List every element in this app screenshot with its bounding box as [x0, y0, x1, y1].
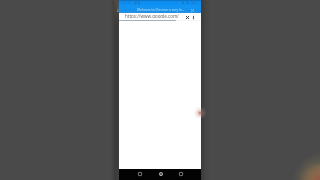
staticText: 11:11 — [121, 0, 132, 6]
button[interactable]: Stop loading — [184, 14, 190, 20]
button[interactable]: Recent apps — [176, 169, 185, 178]
staticText: https://www.google.com/ — [125, 13, 179, 18]
button[interactable]: More options — [190, 14, 196, 20]
button[interactable]: Home — [156, 169, 165, 178]
staticText: Welcome to Chrome: a very long title — [137, 8, 185, 12]
button[interactable]: Close tab — [190, 8, 195, 13]
button[interactable]: Back — [135, 169, 144, 178]
